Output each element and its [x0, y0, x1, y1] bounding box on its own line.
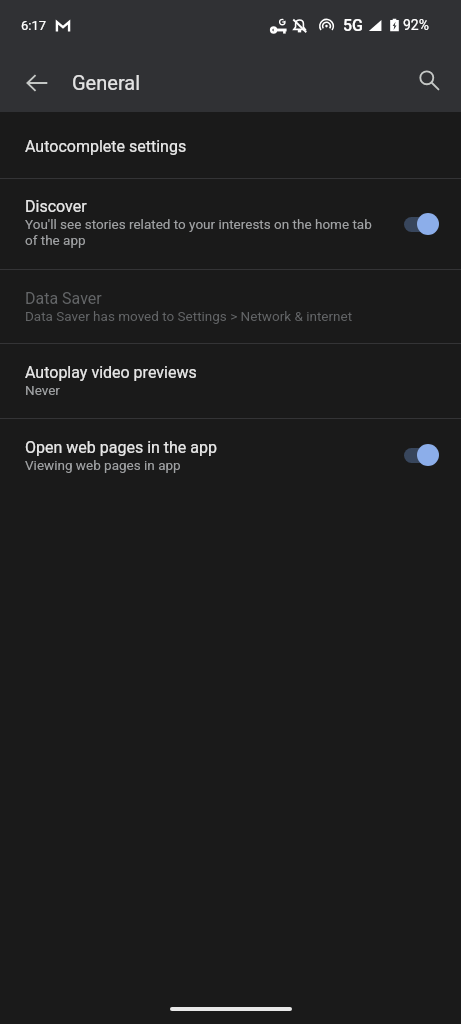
button[interactable]: Autocomplete settings [0, 112, 461, 178]
button[interactable]: Open web pages in the app [0, 419, 461, 491]
button[interactable]: Navigate up [14, 60, 59, 105]
staticText: 92% [403, 17, 429, 33]
staticText: Data Saver [25, 289, 102, 308]
staticText: Data Saver has moved to Settings > Netwo… [25, 308, 353, 324]
staticText: Autoplay video previews [25, 363, 197, 382]
staticText: Never [25, 382, 60, 398]
staticText: Autocomplete settings [25, 137, 187, 156]
staticText: General [72, 71, 141, 94]
button[interactable]: Discover [0, 179, 461, 269]
button[interactable]: Data Saver [0, 270, 461, 343]
button[interactable]: Autoplay video previews [0, 344, 461, 418]
staticText: You'll see stories related to your inter… [25, 216, 372, 248]
staticText: 5G [343, 16, 363, 35]
staticText: Open web pages in the app [25, 438, 217, 457]
staticText: Discover [25, 197, 87, 216]
staticText: 6:17 [21, 18, 47, 33]
staticText: Viewing web pages in app [25, 457, 181, 473]
button[interactable]: Search [407, 58, 451, 102]
